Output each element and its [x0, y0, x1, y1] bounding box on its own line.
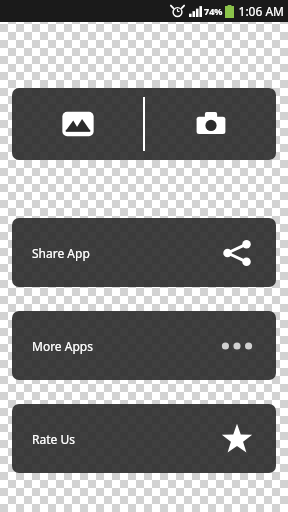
- button[interactable]: Gallery: [12, 88, 143, 160]
- staticText: More Apps: [32, 338, 93, 354]
- button[interactable]: More Apps: [12, 311, 276, 380]
- staticText: 1:06 AM: [238, 3, 284, 19]
- staticText: 74%: [204, 5, 223, 17]
- button[interactable]: Share App: [12, 218, 276, 287]
- button[interactable]: Camera: [145, 88, 276, 160]
- staticText: Rate Us: [32, 431, 75, 447]
- staticText: Share App: [32, 245, 90, 261]
- button[interactable]: Rate Us: [12, 404, 276, 473]
